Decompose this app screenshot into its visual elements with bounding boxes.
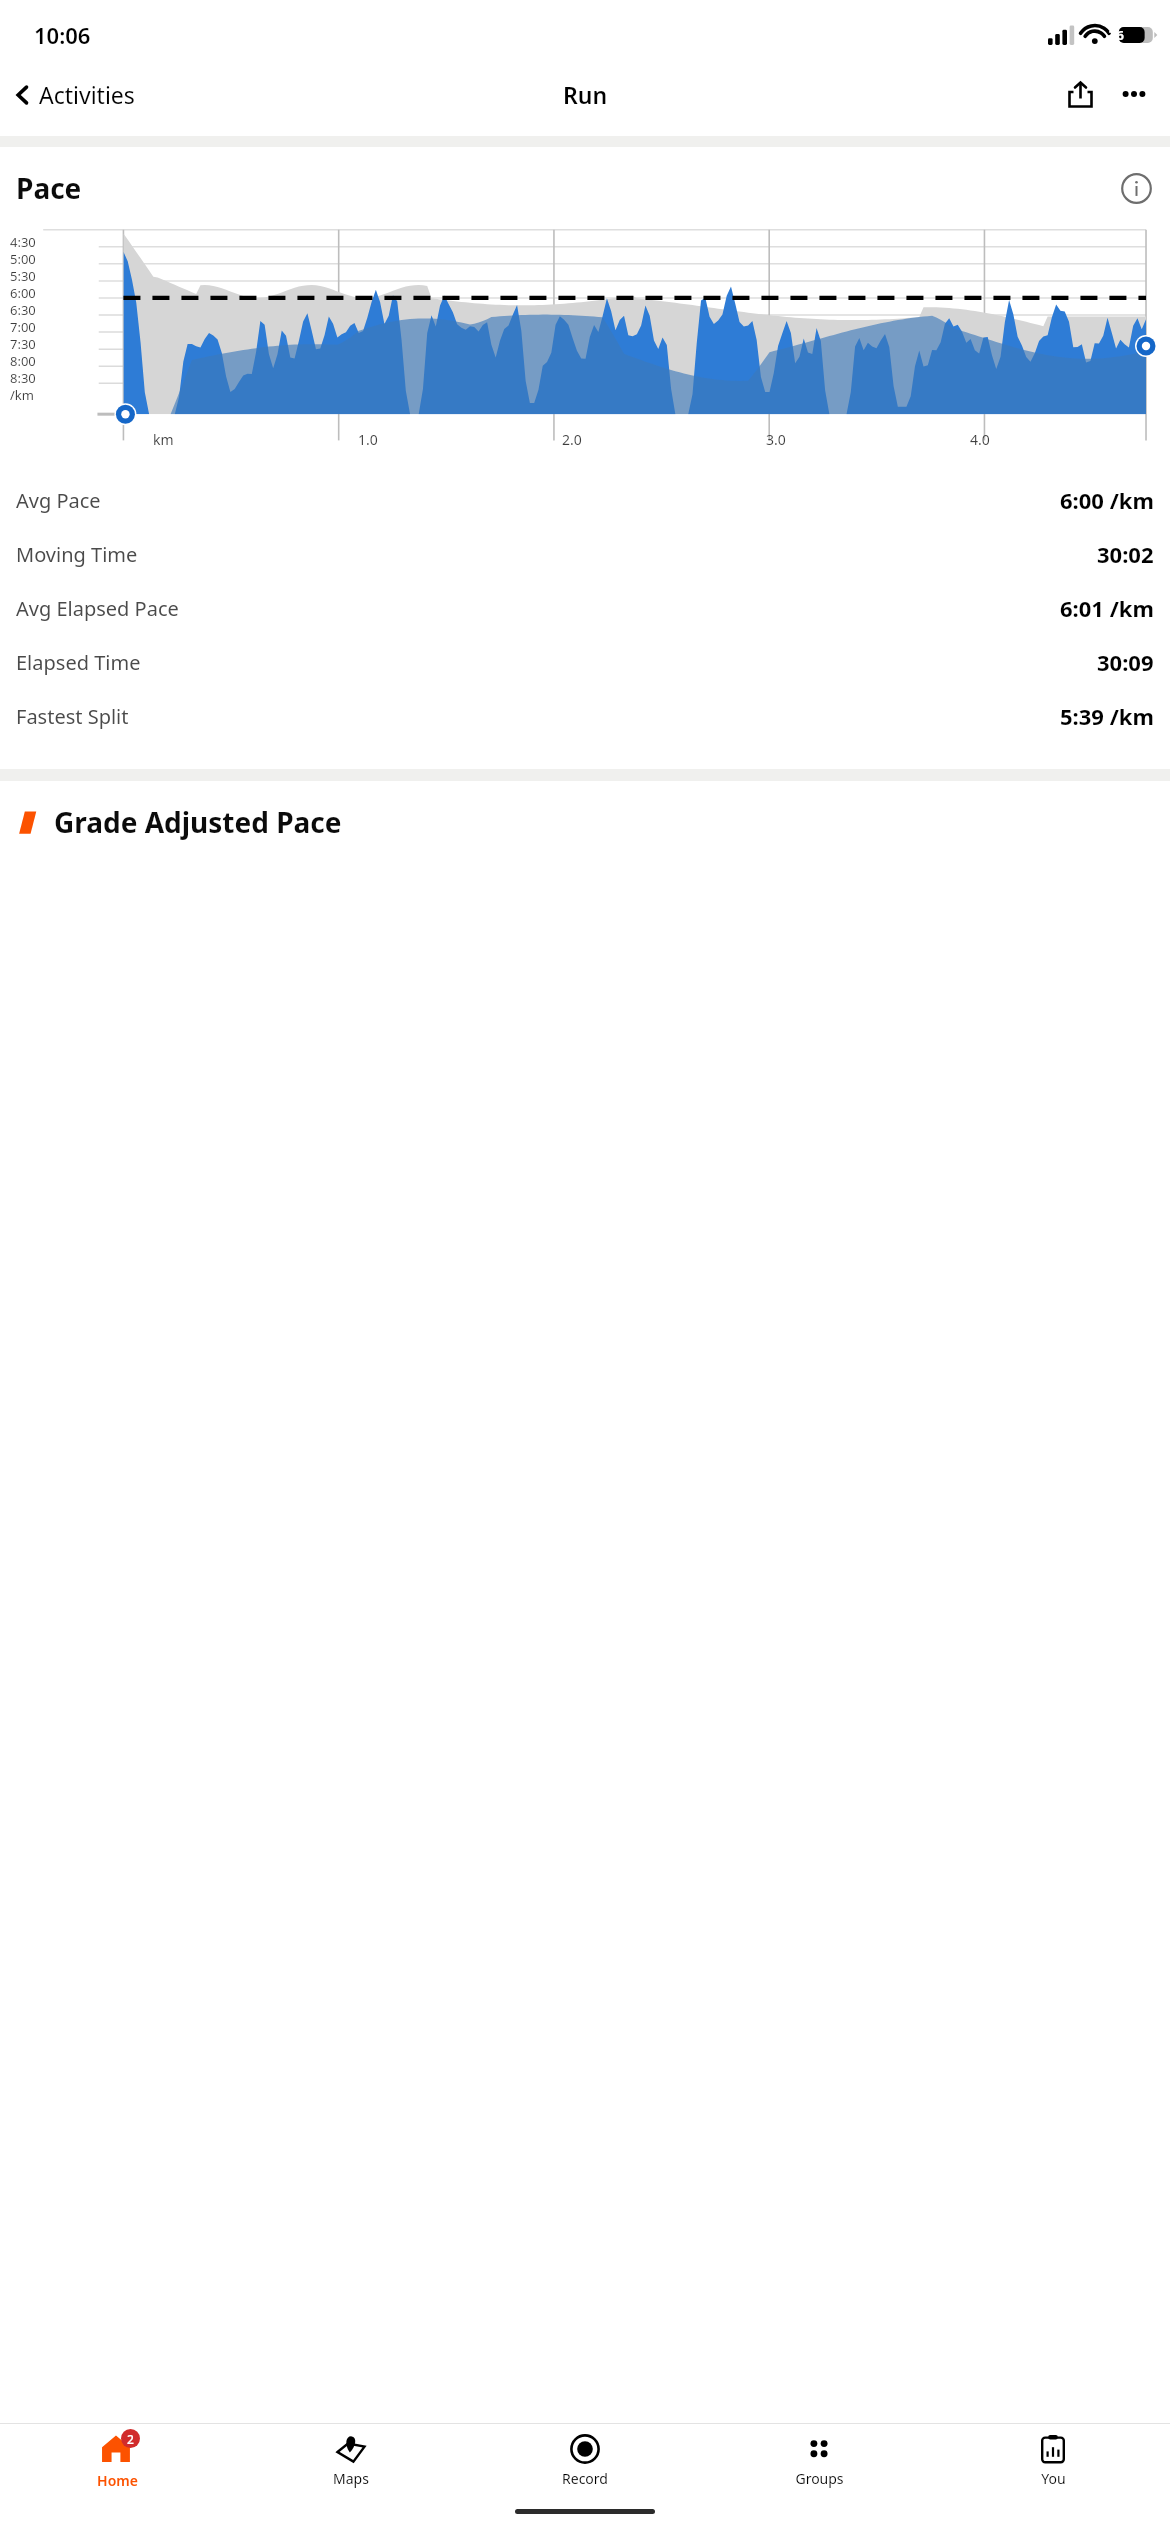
staticText: Avg Pace — [16, 487, 101, 514]
button[interactable]: Activities — [0, 73, 143, 116]
staticText: Home — [97, 2471, 138, 2490]
staticText: 6:00 — [10, 284, 36, 301]
staticText: Run — [563, 79, 608, 110]
button[interactable]: Moving Time — [0, 527, 1170, 581]
staticText: 6:00 /km — [1060, 485, 1154, 515]
staticText: 6:01 /km — [1060, 593, 1154, 623]
staticText: Pace — [16, 169, 82, 207]
staticText: Fastest Split — [16, 703, 129, 730]
button[interactable]: Elapsed Time — [0, 635, 1170, 689]
staticText: Elapsed Time — [16, 649, 141, 676]
staticText: Grade Adjusted Pace — [54, 803, 342, 841]
button[interactable]: Avg Elapsed Pace — [0, 581, 1170, 635]
staticText: You — [1041, 2469, 1066, 2488]
button[interactable]: 2 — [0, 2424, 234, 2498]
staticText: km — [153, 430, 174, 449]
staticText: 5:30 — [10, 267, 36, 284]
staticText: 30:09 — [1097, 647, 1154, 677]
staticText: 6:30 — [10, 301, 36, 318]
staticText: 3.0 — [766, 430, 786, 449]
staticText: 2 — [127, 2431, 134, 2447]
staticText: Record — [562, 2469, 608, 2488]
staticText: 76 — [1109, 26, 1124, 44]
staticText: /km — [10, 386, 34, 403]
button[interactable]: You — [936, 2424, 1170, 2498]
staticText: 7:30 — [10, 335, 36, 352]
staticText: 30:02 — [1097, 539, 1154, 569]
staticText: 10:06 — [34, 20, 91, 50]
staticText: Avg Elapsed Pace — [16, 595, 179, 622]
staticText: Maps — [333, 2469, 369, 2488]
staticText: 4.0 — [970, 430, 990, 449]
staticText: 4:30 — [10, 233, 36, 250]
staticText: 8:00 — [10, 352, 36, 369]
staticText: Groups — [795, 2469, 844, 2488]
staticText: 1.0 — [358, 430, 378, 449]
button[interactable]: Avg Pace — [0, 473, 1170, 527]
staticText: 7:00 — [10, 318, 36, 335]
button[interactable]: Share — [1058, 72, 1102, 116]
button[interactable]: Information about pace — [1118, 170, 1154, 206]
staticText: 8:30 — [10, 369, 36, 386]
button[interactable]: Record — [468, 2424, 702, 2498]
button[interactable]: Groups — [702, 2424, 936, 2498]
button[interactable]: Maps — [234, 2424, 468, 2498]
staticText: 5:39 /km — [1060, 701, 1154, 731]
button[interactable]: Fastest Split — [0, 689, 1170, 743]
staticText: Activities — [39, 79, 135, 110]
staticText: 2.0 — [562, 430, 582, 449]
staticText: 5:00 — [10, 250, 36, 267]
button[interactable]: More options — [1112, 72, 1156, 116]
staticText: Moving Time — [16, 541, 138, 568]
